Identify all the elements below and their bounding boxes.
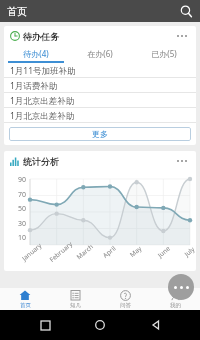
staticText: 待办(4) [23, 48, 49, 59]
button[interactable]: Recents [34, 314, 56, 336]
staticText: 30 [4, 219, 26, 229]
staticText: 更多 [92, 129, 108, 139]
staticText: 1月北京出差补助 [10, 95, 75, 107]
button[interactable]: 已办(5) [132, 46, 196, 61]
staticText: April [101, 243, 118, 260]
button[interactable]: 在办(6) [68, 46, 132, 61]
staticText: 已办(5) [151, 48, 177, 59]
staticText: 我的 [170, 302, 181, 309]
staticText: June [156, 244, 172, 259]
staticText: 1月话费补助 [10, 80, 58, 92]
button[interactable]: 首页 [0, 288, 50, 310]
staticText: 1月北京出差补助 [10, 110, 75, 122]
staticText: 问答 [120, 302, 131, 309]
button[interactable]: 待办(4) [4, 46, 68, 61]
staticText: 70 [4, 190, 26, 200]
button[interactable]: 问答 [100, 288, 150, 310]
staticText: 在办(6) [87, 48, 113, 59]
button[interactable]: Search [177, 2, 195, 20]
staticText: March [74, 242, 95, 261]
staticText: 待办任务 [23, 31, 59, 42]
staticText: July [182, 244, 196, 258]
staticText: January [20, 240, 44, 263]
staticText: May [128, 244, 143, 259]
button[interactable]: Options [174, 153, 190, 169]
button[interactable]: 我的 [150, 288, 200, 310]
staticText: 1月11号加班补助 [10, 65, 76, 77]
staticText: 50 [4, 204, 26, 214]
button[interactable]: 1月话费补助 [4, 78, 196, 93]
staticText: February [47, 239, 75, 264]
staticText: 首页 [20, 302, 31, 309]
staticText: 统计分析 [23, 156, 59, 167]
staticText: 首页 [7, 5, 27, 18]
button[interactable]: More actions [168, 274, 194, 300]
button[interactable]: 1月11号加班补助 [4, 63, 196, 78]
staticText: 10 [4, 233, 26, 243]
button[interactable]: Back [145, 314, 167, 336]
button[interactable]: Home [89, 314, 111, 336]
button[interactable]: 更多 [9, 127, 191, 141]
staticText: 知几 [70, 302, 81, 309]
button[interactable]: Options [174, 28, 190, 44]
button[interactable]: 知几 [50, 288, 100, 310]
button[interactable]: 1月北京出差补助 [4, 93, 196, 108]
button[interactable]: 1月北京出差补助 [4, 108, 196, 123]
staticText: 90 [4, 175, 26, 185]
